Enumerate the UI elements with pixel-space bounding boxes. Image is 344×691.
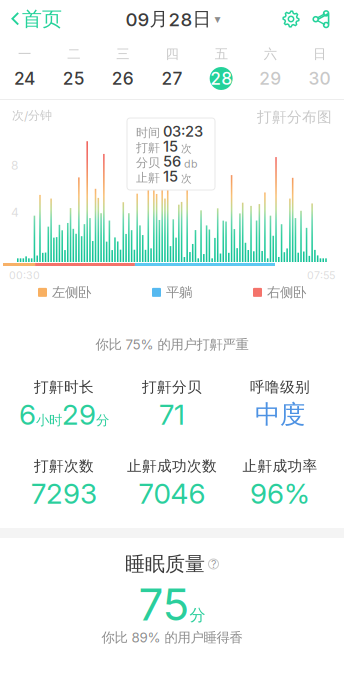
staticText: 24 [14,68,35,89]
button[interactable]: 日 [295,42,344,94]
button[interactable]: 设置 [276,0,306,38]
staticText: 时间 [136,125,160,140]
staticText: 打鼾分布图 [257,108,332,126]
staticText: 左侧卧 [52,284,91,301]
staticText: 29 [259,68,281,89]
staticText: 右侧卧 [267,284,306,301]
button[interactable]: 六 [246,42,295,94]
staticText: 三 [116,46,129,62]
staticText: 30 [308,68,330,89]
staticText: 27 [161,68,182,89]
staticText: 25 [63,68,85,89]
staticText: 次 [181,172,192,185]
staticText: 你比 89% 的用户睡得香 [101,629,242,646]
staticText: 分 [189,605,205,625]
staticText: 6 [19,398,36,431]
staticText: 打鼾分贝 [142,378,202,396]
staticText: 28 [210,68,232,89]
staticText: ? [211,557,216,570]
staticText: 07:55 [307,269,335,282]
staticText: 00:30 [9,269,40,282]
staticText: 4 [11,205,19,219]
staticText: 呼噜级别 [250,378,310,396]
staticText: 小时 [36,412,62,429]
staticText: 打鼾 [136,140,160,155]
staticText: 二 [67,46,80,62]
button[interactable]: 三 [98,42,147,94]
staticText: 五 [215,46,228,62]
staticText: 六 [264,46,277,62]
button[interactable]: 四 [147,42,196,94]
staticText: 睡眠质量 [125,551,205,577]
staticText: ▾ [214,12,220,26]
staticText: 7293 [31,477,97,510]
staticText: 你比 75% 的用户打鼾严重 [95,336,248,353]
staticText: 止鼾成功率 [242,457,317,475]
staticText: 打鼾时长 [34,378,94,396]
staticText: 15 [163,138,178,155]
staticText: 日 [313,46,326,62]
staticText: 71 [159,398,185,431]
staticText: 中度 [255,398,305,430]
staticText: 打鼾次数 [34,457,94,475]
staticText: 96% [250,477,310,510]
staticText: db [184,157,198,170]
button[interactable]: 首页 [0,0,70,38]
staticText: 次/分钟 [12,108,52,123]
staticText: 分 [96,412,109,429]
staticText: 29 [62,398,96,431]
button[interactable]: 分享 [306,0,336,38]
button[interactable]: 09月28日 [125,0,220,38]
staticText: 56 [163,153,181,170]
staticText: 7046 [138,477,205,510]
staticText: 75 [138,578,189,631]
staticText: 止鼾 [136,170,160,185]
staticText: 26 [112,68,134,89]
staticText: 09月28日 [125,7,211,31]
staticText: 首页 [22,6,62,32]
staticText: 四 [165,46,178,62]
staticText: 分贝 [136,155,160,170]
staticText: 03:23 [163,123,203,140]
button[interactable]: 一 [0,42,49,94]
staticText: 止鼾成功次数 [127,457,217,475]
staticText: 平躺 [166,284,192,301]
staticText: 一 [18,46,31,62]
button[interactable]: 五 [197,42,246,94]
staticText: 15 [163,168,178,185]
button[interactable]: 二 [49,42,98,94]
staticText: 次 [181,142,192,155]
staticText: 8 [11,158,18,172]
